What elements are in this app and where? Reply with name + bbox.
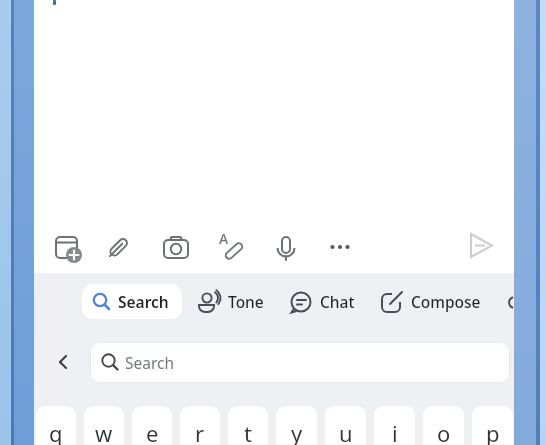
button[interactable]: t [228, 406, 268, 445]
button[interactable]: Chat [288, 286, 355, 317]
button[interactable]: y [276, 406, 317, 445]
button[interactable]: e [132, 406, 172, 445]
staticText: t [244, 418, 252, 445]
button[interactable] [154, 224, 198, 268]
button[interactable]: Tone [196, 286, 264, 317]
staticText: Search [118, 291, 169, 312]
button[interactable] [460, 224, 504, 268]
button[interactable]: o [423, 406, 464, 445]
button[interactable]: r [180, 406, 220, 445]
button[interactable] [264, 224, 308, 268]
button[interactable] [209, 224, 253, 268]
staticText: i [392, 418, 398, 445]
button[interactable]: w [84, 406, 124, 445]
button[interactable]: u [325, 406, 366, 445]
staticText: A [219, 229, 229, 248]
staticText: w [95, 418, 113, 445]
staticText: y [291, 418, 303, 445]
staticText: Tone [228, 291, 264, 312]
staticText: u [339, 418, 353, 445]
staticText: e [146, 418, 159, 445]
button[interactable]: i [374, 406, 415, 445]
button[interactable] [318, 224, 362, 268]
button[interactable]: q [36, 406, 76, 445]
staticText: q [49, 418, 63, 445]
button[interactable] [45, 224, 89, 268]
staticText: o [437, 418, 451, 445]
button[interactable] [96, 224, 140, 268]
button[interactable] [53, 352, 73, 372]
staticText: Search [125, 352, 175, 373]
staticText: r [195, 418, 205, 445]
staticText: Compose [411, 291, 481, 312]
staticText: p [486, 418, 500, 445]
staticText: Chat [320, 291, 355, 312]
button[interactable]: p [472, 406, 513, 445]
button[interactable]: Search [90, 342, 510, 383]
button[interactable]: Compose [379, 286, 481, 317]
button[interactable]: Search [82, 284, 182, 319]
